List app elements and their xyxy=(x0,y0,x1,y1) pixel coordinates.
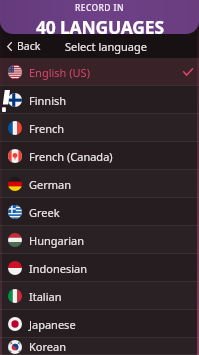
button[interactable]: Indonesian xyxy=(0,254,199,282)
staticText: 40 LANGUAGES xyxy=(36,15,164,34)
other: Selected xyxy=(183,68,193,76)
button[interactable]: Italian xyxy=(0,282,199,310)
staticText: Italian xyxy=(29,289,62,304)
staticText: Indonesian xyxy=(29,261,88,276)
button[interactable]: Hungarian xyxy=(0,226,199,254)
button[interactable]: Back xyxy=(0,35,49,57)
button[interactable]: Japanese xyxy=(0,310,199,338)
staticText: Japanese xyxy=(29,317,76,332)
staticText: Finnish xyxy=(29,93,67,108)
staticText: RECORD IN xyxy=(75,2,124,14)
button[interactable]: Finnish xyxy=(0,86,199,114)
staticText: Greek xyxy=(29,205,60,220)
staticText: Hungarian xyxy=(29,233,85,248)
staticText: French xyxy=(29,121,65,136)
staticText: French (Canada) xyxy=(29,149,113,164)
button[interactable]: German xyxy=(0,170,199,198)
button[interactable]: English (US) xyxy=(0,58,199,86)
staticText: German xyxy=(29,177,72,192)
staticText: Korean xyxy=(29,339,66,354)
button[interactable]: Greek xyxy=(0,198,199,226)
button[interactable]: Korean xyxy=(0,338,199,355)
button[interactable]: French xyxy=(0,114,199,142)
staticText: English (US) xyxy=(29,65,90,80)
staticText: Select language xyxy=(65,39,147,54)
button[interactable]: French (Canada) xyxy=(0,142,199,170)
staticText: Back xyxy=(17,39,41,53)
